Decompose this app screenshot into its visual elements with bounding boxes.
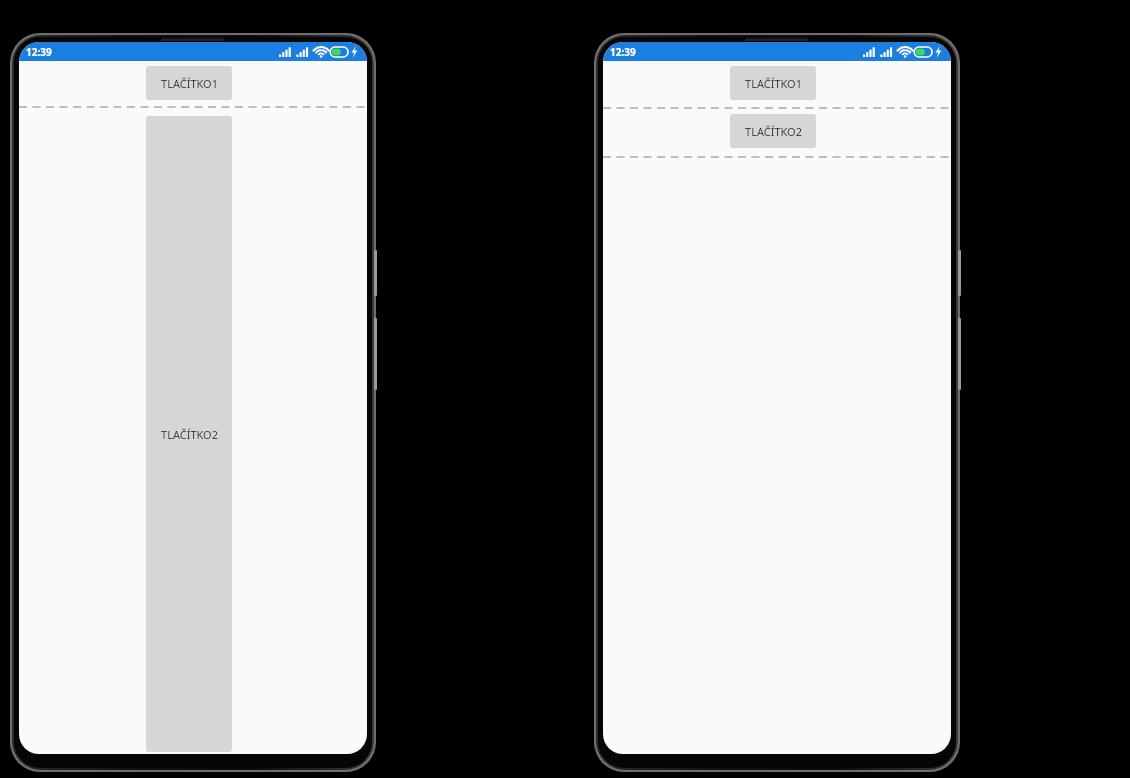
button[interactable]: TLAČÍTKO1: [146, 66, 232, 100]
staticText: 12:39: [26, 45, 52, 59]
staticText: TLAČÍTKO2: [745, 124, 802, 139]
button[interactable]: TLAČÍTKO2: [730, 114, 816, 148]
button[interactable]: TLAČÍTKO2: [146, 116, 232, 752]
staticText: TLAČÍTKO1: [161, 76, 218, 91]
staticText: TLAČÍTKO2: [161, 427, 218, 442]
staticText: 12:39: [610, 45, 636, 59]
button[interactable]: TLAČÍTKO1: [730, 66, 816, 100]
staticText: TLAČÍTKO1: [745, 76, 802, 91]
